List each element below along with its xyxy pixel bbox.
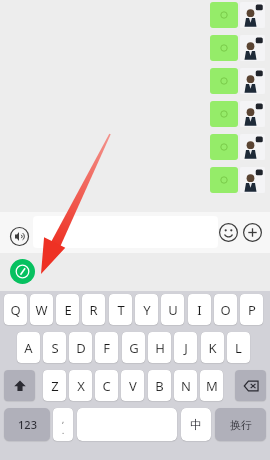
staticText: X <box>77 377 85 395</box>
button[interactable]: , <box>53 408 73 441</box>
button[interactable]: G <box>122 332 145 363</box>
button[interactable]: U <box>161 294 184 325</box>
staticText: T <box>117 301 125 319</box>
button[interactable]: D <box>69 332 92 363</box>
staticText: O <box>220 301 231 319</box>
button[interactable]: S <box>43 332 66 363</box>
staticText: Y <box>143 301 151 319</box>
button[interactable]: I <box>188 294 211 325</box>
staticText: 中 <box>190 417 202 432</box>
staticText: J <box>184 339 188 357</box>
button[interactable]: Shift <box>4 370 35 401</box>
staticText: N <box>181 377 191 395</box>
button[interactable]: L <box>227 332 250 363</box>
button[interactable]: K <box>201 332 224 363</box>
staticText: B <box>155 377 164 395</box>
staticText: . <box>62 425 65 436</box>
button[interactable]: Avatar <box>240 101 265 127</box>
staticText: 换行 <box>230 418 252 432</box>
button[interactable] <box>33 216 218 248</box>
button[interactable]: Emoji <box>219 223 238 242</box>
button[interactable]: Z <box>43 370 66 401</box>
button[interactable]: X <box>69 370 92 401</box>
button[interactable]: T <box>109 294 132 325</box>
button[interactable]: Y <box>135 294 158 325</box>
staticText: Q <box>10 301 21 319</box>
button[interactable]: Voice input <box>6 223 33 250</box>
button[interactable]: Backspace <box>235 370 266 401</box>
staticText: G <box>129 339 139 357</box>
button[interactable]: J <box>174 332 197 363</box>
staticText: F <box>103 339 110 357</box>
staticText: C <box>102 377 111 395</box>
button[interactable]: P <box>240 294 263 325</box>
button[interactable]: H <box>148 332 171 363</box>
button[interactable]: Translate <box>10 259 35 284</box>
staticText: H <box>155 339 165 357</box>
staticText: U <box>168 301 178 319</box>
button[interactable]: W <box>30 294 53 325</box>
button[interactable]: Avatar <box>240 68 265 94</box>
button[interactable] <box>210 134 238 160</box>
staticText: Z <box>51 377 59 395</box>
button[interactable]: 中 <box>181 408 211 441</box>
button[interactable] <box>210 35 238 61</box>
staticText: W <box>35 301 48 319</box>
staticText: P <box>248 301 256 319</box>
staticText: M <box>206 377 218 395</box>
button[interactable]: 换行 <box>215 408 266 441</box>
button[interactable]: C <box>95 370 118 401</box>
staticText: E <box>64 301 72 319</box>
button[interactable]: Q <box>4 294 27 325</box>
staticText: R <box>89 301 98 319</box>
button[interactable]: 123 <box>4 408 50 441</box>
button[interactable]: Avatar <box>240 2 265 28</box>
button[interactable]: O <box>214 294 237 325</box>
staticText: V <box>129 377 137 395</box>
button[interactable] <box>210 2 238 28</box>
button[interactable]: More <box>243 223 262 242</box>
button[interactable] <box>210 68 238 94</box>
button[interactable]: N <box>174 370 197 401</box>
button[interactable]: Avatar <box>240 167 265 193</box>
staticText: A <box>24 339 33 357</box>
button[interactable]: E <box>56 294 79 325</box>
button[interactable]: V <box>121 370 144 401</box>
button[interactable]: A <box>17 332 40 363</box>
button[interactable]: Avatar <box>240 35 265 61</box>
staticText: 123 <box>18 417 37 432</box>
button[interactable] <box>210 101 238 127</box>
staticText: K <box>208 339 217 357</box>
button[interactable]: Avatar <box>240 134 265 160</box>
staticText: , <box>62 414 65 425</box>
staticText: D <box>76 339 86 357</box>
button[interactable]: F <box>95 332 118 363</box>
staticText: L <box>235 339 242 357</box>
button[interactable]: R <box>82 294 105 325</box>
staticText: S <box>51 339 59 357</box>
staticText: I <box>197 301 202 319</box>
button[interactable]: B <box>148 370 171 401</box>
button[interactable] <box>210 167 238 193</box>
button[interactable]: M <box>200 370 223 401</box>
button[interactable]: Space <box>77 408 177 441</box>
